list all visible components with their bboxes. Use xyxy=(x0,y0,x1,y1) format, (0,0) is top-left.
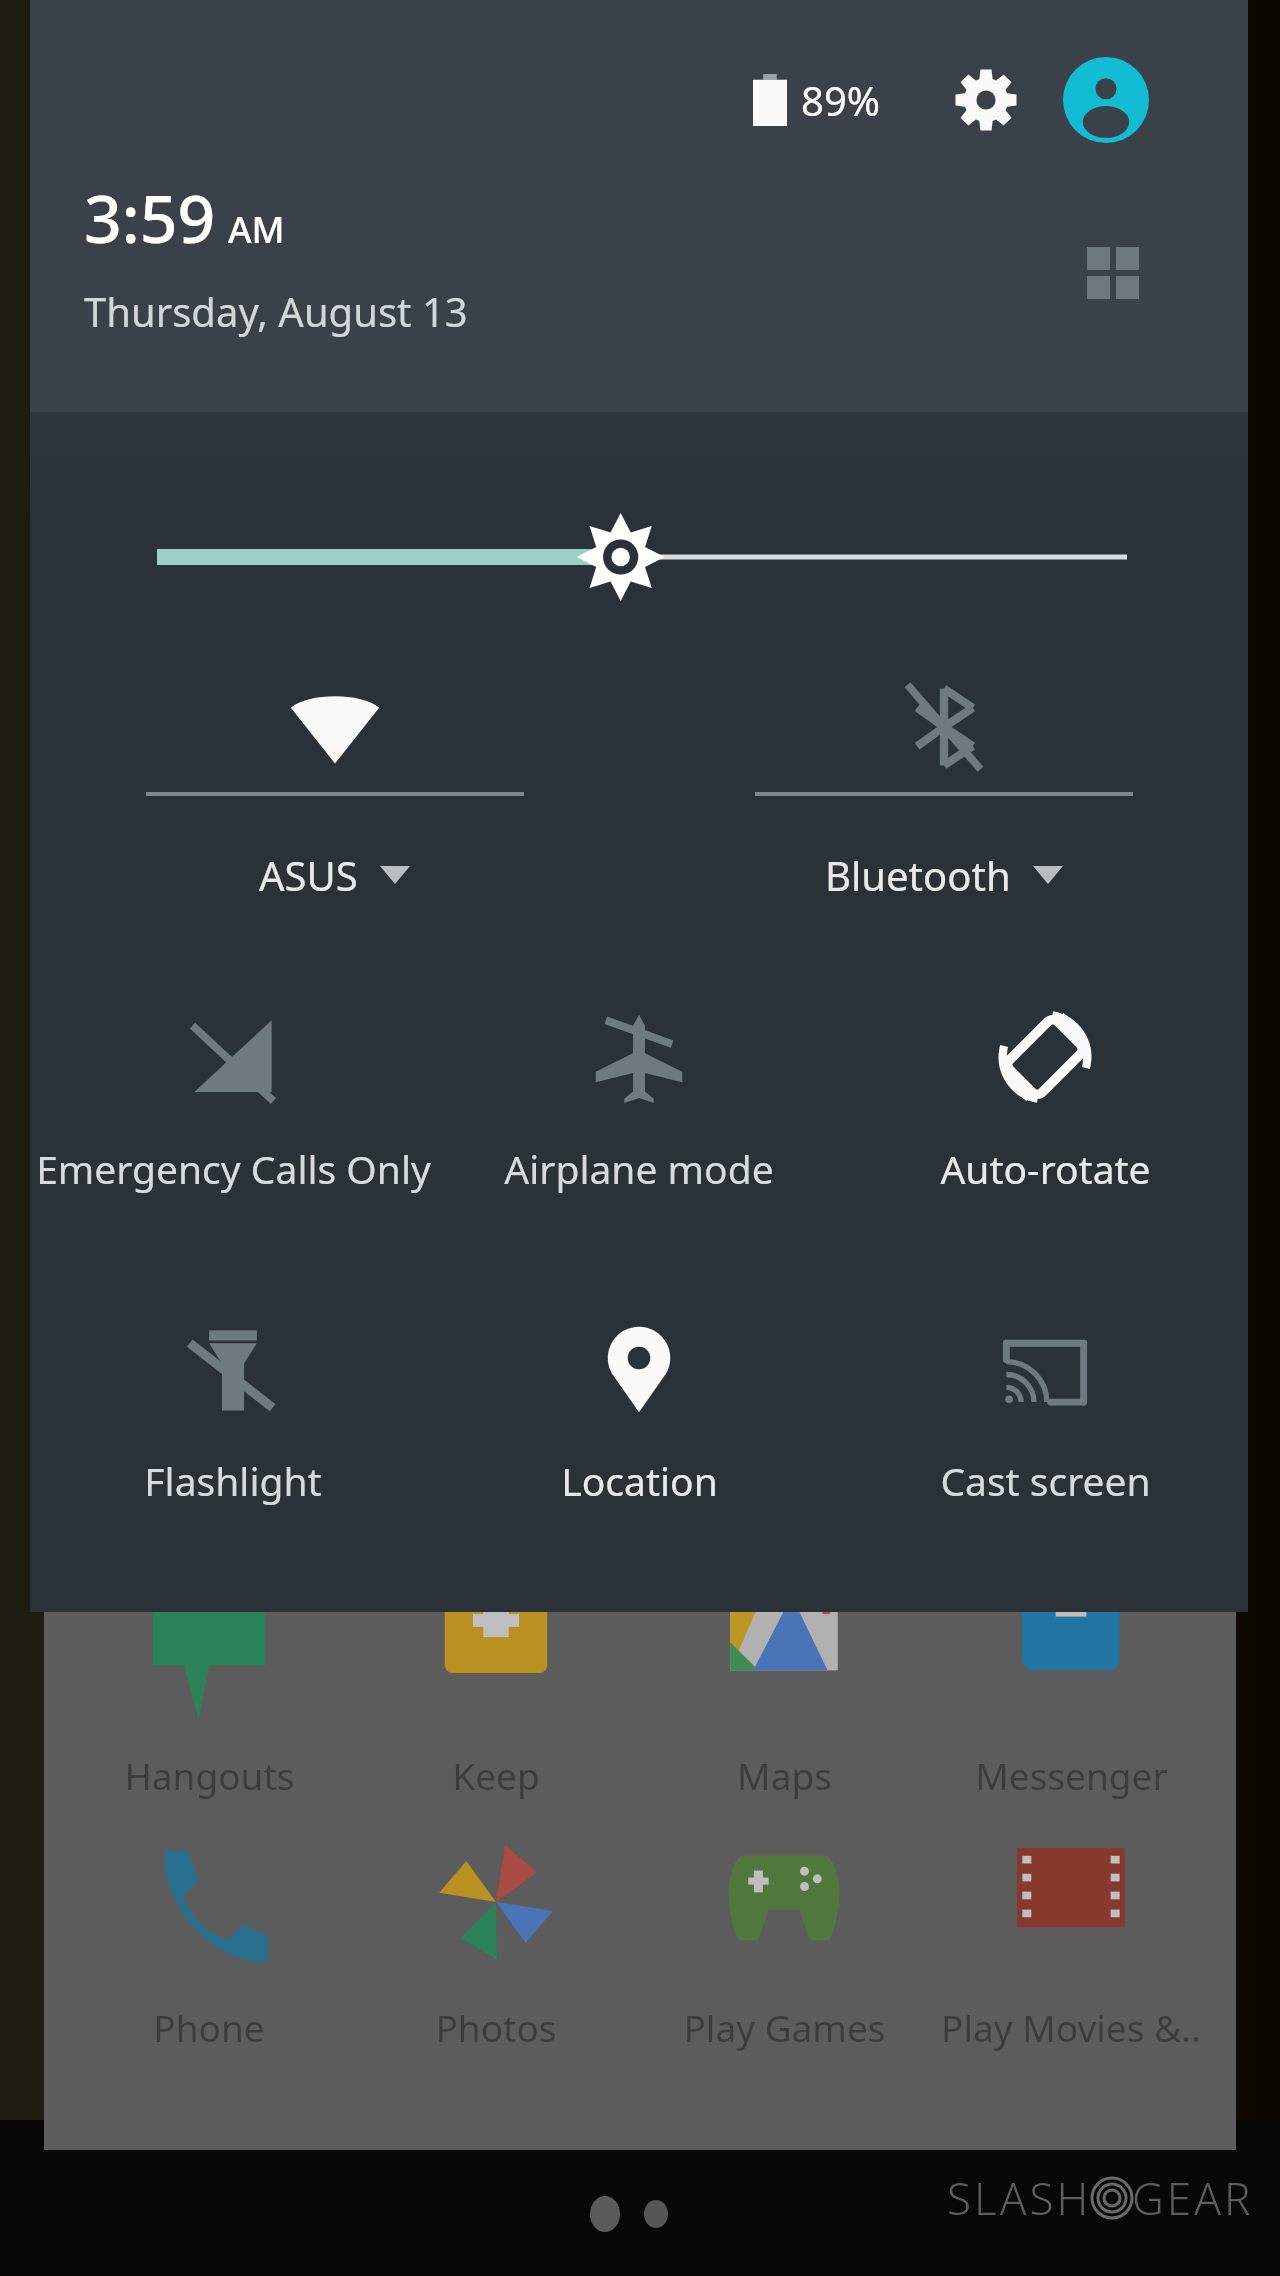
staticText: Emergency Calls Only xyxy=(36,1142,431,1195)
staticText: Auto-rotate xyxy=(940,1142,1151,1195)
button[interactable]: Play Games xyxy=(644,1812,924,2052)
button[interactable]: ASUS xyxy=(30,662,639,962)
staticText: AM xyxy=(228,205,285,254)
staticText: Play Movies &.. xyxy=(941,2002,1201,2052)
button[interactable]: Photos xyxy=(356,1812,636,2052)
staticText: Cast screen xyxy=(940,1454,1151,1507)
button[interactable]: Flashlight xyxy=(30,1284,436,1584)
staticText: Flashlight xyxy=(144,1454,322,1507)
button[interactable]: Bluetooth xyxy=(639,662,1248,962)
staticText: Photos xyxy=(435,2002,557,2052)
button[interactable]: Edit tiles xyxy=(1070,230,1156,316)
staticText: Play Games xyxy=(683,2002,886,2052)
staticText: Keep xyxy=(452,1750,540,1800)
staticText: ASUS xyxy=(259,848,358,902)
button[interactable]: Brightness xyxy=(30,492,1248,622)
button[interactable]: Location xyxy=(436,1284,842,1584)
button[interactable]: Messenger xyxy=(931,1560,1211,1800)
staticText: Hangouts xyxy=(124,1750,295,1800)
button[interactable]: User profile xyxy=(1062,56,1150,144)
staticText: SLASH xyxy=(947,2168,1092,2228)
button[interactable]: Hangouts xyxy=(69,1560,349,1800)
staticText: Thursday, August 13 xyxy=(84,284,468,338)
staticText: Airplane mode xyxy=(504,1142,774,1195)
staticText: Bluetooth xyxy=(825,848,1011,902)
button[interactable]: Cast screen xyxy=(842,1284,1248,1584)
staticText: Messenger xyxy=(975,1750,1168,1800)
staticText: Phone xyxy=(153,2002,265,2052)
button[interactable]: Settings xyxy=(942,56,1030,144)
button[interactable]: Keep xyxy=(356,1560,636,1800)
staticText: 89% xyxy=(801,73,880,127)
button[interactable]: Phone xyxy=(69,1812,349,2052)
button[interactable]: Auto-rotate xyxy=(842,972,1248,1272)
button[interactable]: Play Movies &.. xyxy=(931,1812,1211,2052)
button[interactable]: Airplane mode xyxy=(436,972,842,1272)
staticText: 3:59 xyxy=(84,172,216,262)
button[interactable]: Maps xyxy=(644,1560,924,1800)
staticText: Maps xyxy=(737,1750,832,1800)
staticText: Location xyxy=(561,1454,718,1507)
button[interactable]: Emergency Calls Only xyxy=(30,972,436,1272)
staticText: GEAR xyxy=(1132,2168,1254,2228)
